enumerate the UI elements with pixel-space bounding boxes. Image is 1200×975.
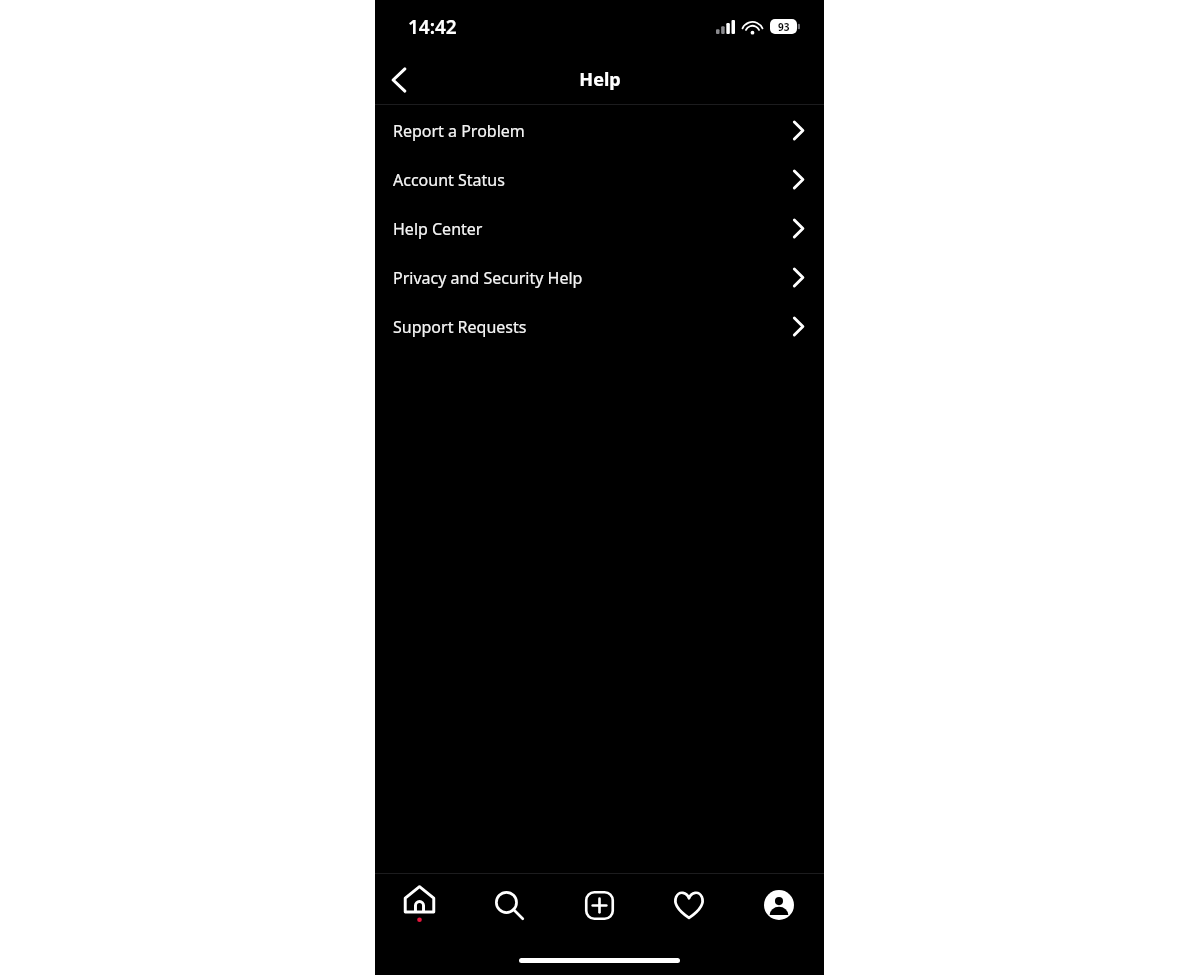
staticText: Help	[579, 67, 621, 92]
staticText: Account Status	[393, 169, 793, 191]
button[interactable]: Report a Problem	[375, 106, 824, 155]
button[interactable]: Home	[375, 874, 464, 936]
staticText: Privacy and Security Help	[393, 267, 793, 289]
button[interactable]: Account Status	[375, 155, 824, 204]
button[interactable]: Create	[554, 874, 644, 936]
staticText: Support Requests	[393, 316, 793, 338]
staticText: 14:42	[408, 14, 457, 40]
button[interactable]: Support Requests	[375, 302, 824, 351]
button[interactable]: Help Center	[375, 204, 824, 253]
button[interactable]: Search	[464, 874, 554, 936]
staticText: 93	[778, 20, 790, 34]
staticText: Help Center	[393, 218, 793, 240]
button[interactable]: Profile	[734, 874, 824, 936]
button[interactable]: Back	[375, 56, 423, 104]
button[interactable]: Privacy and Security Help	[375, 253, 824, 302]
staticText: Report a Problem	[393, 120, 793, 142]
button[interactable]: Activity	[644, 874, 734, 936]
